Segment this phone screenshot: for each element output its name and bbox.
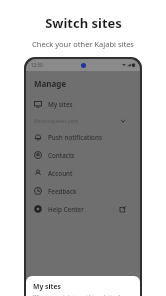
staticText: My sites	[33, 282, 61, 291]
other: Expand site list	[120, 118, 126, 124]
staticText: fitnessqueen.com	[34, 117, 79, 124]
button[interactable]: Push notifications	[26, 128, 133, 146]
staticText: Check your other Kajabi sites	[32, 39, 134, 49]
staticText: Push notifications	[48, 133, 102, 142]
staticText: Switch sites	[45, 14, 122, 32]
staticText: Manage	[34, 78, 67, 89]
button[interactable]: Contacts	[26, 146, 133, 164]
staticText: 12:30	[31, 62, 43, 68]
button[interactable]: Account	[26, 164, 133, 182]
staticText: Account	[48, 169, 73, 178]
staticText: Feedback	[48, 187, 77, 196]
button[interactable]: Help Center	[26, 200, 133, 218]
staticText: Contacts	[48, 151, 75, 160]
staticText: My sites	[48, 100, 73, 109]
button[interactable]: fitnessqueen.com	[26, 113, 133, 128]
button[interactable]: My sites	[26, 95, 133, 113]
staticText: When you switch to another website, the …	[33, 294, 133, 296]
staticText: Help Center	[48, 205, 84, 214]
button[interactable]: Feedback	[26, 182, 133, 200]
